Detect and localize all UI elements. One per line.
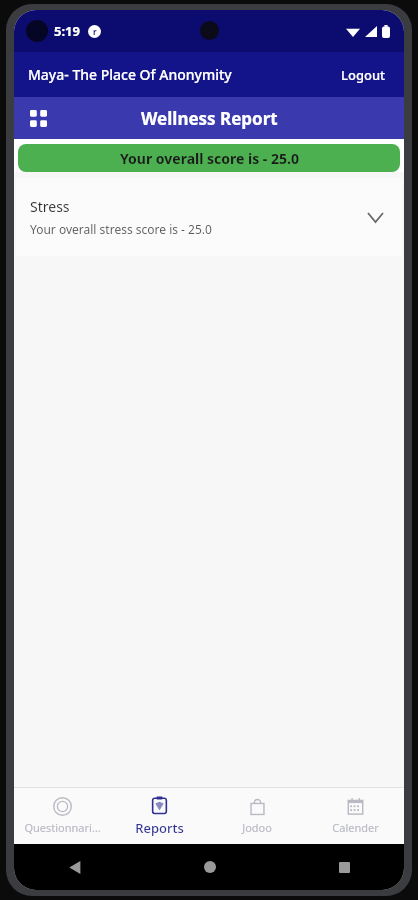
button[interactable]: Stress	[16, 178, 402, 256]
staticText: Reports	[135, 819, 184, 837]
button[interactable]: Back	[60, 853, 89, 882]
button[interactable]: Open menu	[26, 106, 51, 131]
button[interactable]: Your overall score is - 25.0	[18, 144, 400, 172]
staticText: r	[93, 26, 97, 37]
staticText: Logout	[341, 66, 386, 84]
staticText: Your overall stress score is - 25.0	[30, 221, 212, 237]
button[interactable]: Calender	[306, 788, 404, 844]
button[interactable]: Reports	[111, 788, 208, 844]
staticText: Calender	[332, 820, 379, 835]
staticText: Jodoo	[242, 820, 272, 835]
button[interactable]: Jodoo	[208, 788, 306, 844]
staticText: Your overall score is - 25.0	[120, 149, 299, 168]
button[interactable]: Questionnari…	[14, 788, 111, 844]
button[interactable]: Recents	[331, 854, 358, 881]
button[interactable]: Logout	[337, 62, 390, 88]
staticText: Maya- The Place Of Anonymity	[28, 65, 232, 84]
button[interactable]: Home	[196, 853, 224, 881]
staticText: 5:19	[54, 22, 80, 40]
staticText: Wellness Report	[141, 107, 278, 130]
button[interactable]: Expand Stress details	[363, 208, 388, 227]
staticText: Questionnari…	[24, 820, 101, 835]
staticText: Stress	[30, 197, 70, 216]
